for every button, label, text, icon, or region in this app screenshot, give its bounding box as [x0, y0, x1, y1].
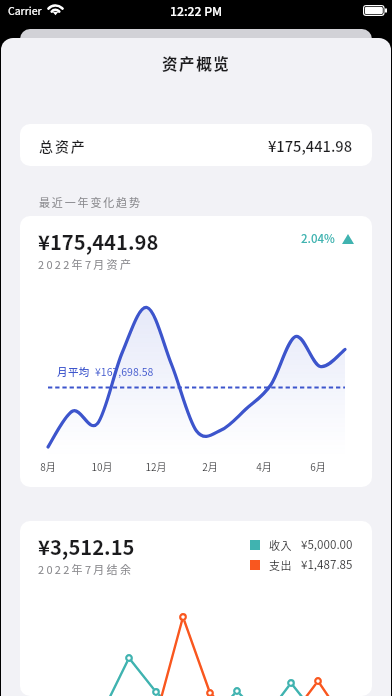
- staticText: 6月: [310, 459, 326, 473]
- button[interactable]: ¥175,441.98: [20, 216, 372, 487]
- staticText: 资产概览: [162, 52, 231, 74]
- other: Battery: [363, 5, 387, 16]
- staticText: 10月: [91, 459, 113, 473]
- staticText: 总资产: [39, 136, 87, 156]
- staticText: ¥175,441.98: [38, 227, 159, 256]
- staticText: 2022年7月资产: [38, 256, 134, 272]
- staticText: 12:22 PM: [170, 2, 223, 20]
- staticText: 最近一年变化趋势: [39, 194, 142, 210]
- staticText: 8月: [40, 459, 56, 473]
- staticText: ¥5,000.00: [301, 536, 353, 553]
- staticText: ¥1,487.85: [301, 556, 353, 573]
- staticText: 收入: [269, 537, 293, 553]
- staticText: 月平均: [57, 364, 90, 379]
- staticText: ¥175,441.98: [268, 135, 353, 156]
- other: Wi-Fi: [47, 4, 64, 15]
- button[interactable]: 总资产: [20, 124, 372, 166]
- staticText: 支出: [269, 557, 293, 573]
- staticText: 2月: [202, 459, 218, 473]
- staticText: 2022年7月结余: [38, 561, 134, 577]
- staticText: 2.04%: [301, 230, 335, 247]
- staticText: Carrier: [8, 3, 42, 18]
- staticText: 4月: [256, 459, 272, 473]
- staticText: 12月: [145, 459, 167, 473]
- staticText: ¥167,698.58: [95, 364, 154, 379]
- staticText: ¥3,512.15: [38, 532, 135, 561]
- button[interactable]: ¥3,512.15: [20, 521, 372, 696]
